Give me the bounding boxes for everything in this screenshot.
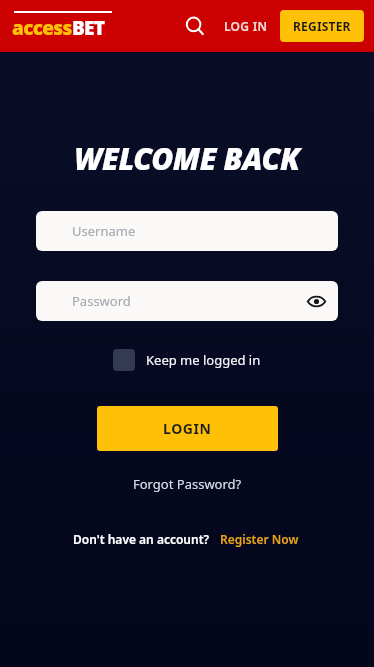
button[interactable]: Show password	[300, 285, 332, 317]
button[interactable]: Search	[178, 9, 212, 43]
button[interactable]: Forgot Password?	[127, 472, 248, 496]
button[interactable]: REGISTER	[280, 10, 364, 42]
staticText: Don't have an account?	[73, 531, 210, 547]
staticText: Username	[72, 222, 136, 240]
staticText: Password	[72, 292, 131, 310]
button[interactable]: LOG IN	[218, 12, 274, 40]
staticText: access	[12, 15, 72, 41]
staticText: LOGIN	[163, 419, 212, 438]
button[interactable]: Register Now	[218, 528, 301, 550]
button[interactable]: Keep me logged in	[111, 345, 263, 375]
button[interactable]: accessBET home	[10, 7, 114, 45]
staticText: Register Now	[220, 531, 299, 547]
staticText: Forgot Password?	[133, 475, 242, 493]
button[interactable]: Password	[36, 281, 338, 321]
staticText: REGISTER	[293, 18, 351, 34]
staticText: BET	[72, 15, 105, 41]
button[interactable]: LOGIN	[97, 406, 278, 451]
staticText: WELCOME BACK	[0, 138, 374, 179]
staticText: LOG IN	[224, 18, 268, 34]
staticText: Keep me logged in	[146, 351, 261, 369]
button[interactable]: Username	[36, 211, 338, 251]
